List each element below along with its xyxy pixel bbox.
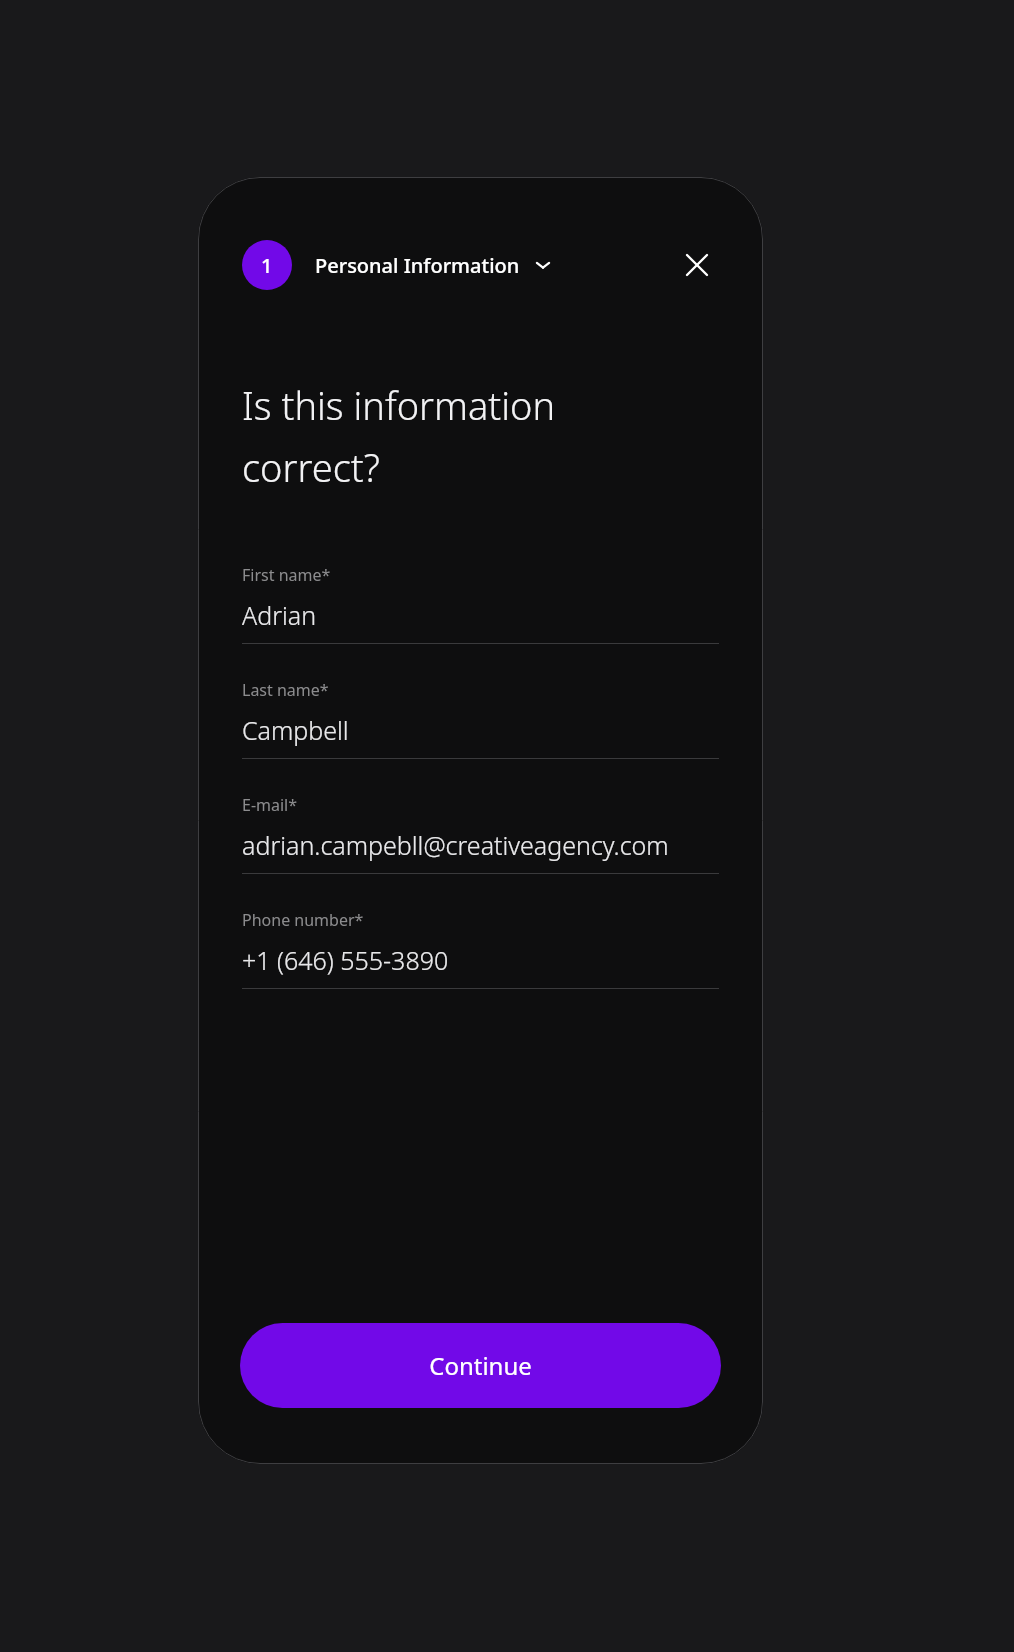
staticText: Adrian bbox=[242, 598, 317, 632]
button[interactable]: E-mail* bbox=[242, 794, 719, 874]
button[interactable]: Close bbox=[675, 243, 719, 287]
staticText: Phone number* bbox=[242, 909, 364, 931]
staticText: +1 (646) 555-3890 bbox=[242, 943, 449, 977]
staticText: Personal Information bbox=[315, 252, 520, 279]
staticText: 1 bbox=[261, 252, 273, 279]
staticText: E-mail* bbox=[242, 794, 298, 816]
staticText: Is this information bbox=[242, 379, 556, 431]
button[interactable]: First name* bbox=[242, 564, 719, 644]
staticText: adrian.campebll@creativeagency.com bbox=[242, 828, 669, 862]
button[interactable]: Continue bbox=[240, 1323, 721, 1408]
staticText: First name* bbox=[242, 564, 331, 586]
button[interactable]: Last name* bbox=[242, 679, 719, 759]
staticText: Continue bbox=[429, 1349, 532, 1382]
button[interactable]: 1 bbox=[242, 240, 552, 290]
staticText: Last name* bbox=[242, 679, 329, 701]
staticText: correct? bbox=[242, 441, 380, 493]
button[interactable]: Phone number* bbox=[242, 909, 719, 989]
staticText: Campbell bbox=[242, 713, 349, 747]
